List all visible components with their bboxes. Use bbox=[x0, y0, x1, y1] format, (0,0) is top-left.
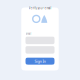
button[interactable]: Sign In bbox=[25, 58, 54, 65]
staticText: Email bbox=[25, 32, 31, 35]
staticText: Verify your email bbox=[28, 6, 51, 10]
staticText: Sign In bbox=[34, 58, 45, 64]
